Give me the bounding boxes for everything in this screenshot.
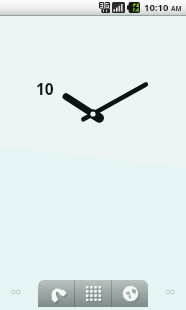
button[interactable]: Phone <box>38 280 74 307</box>
staticText: AM <box>171 4 182 13</box>
staticText: 10 <box>36 78 54 99</box>
button[interactable]: Browser <box>112 280 148 307</box>
staticText: 10:10 <box>144 1 169 14</box>
button[interactable]: All apps <box>75 280 111 307</box>
